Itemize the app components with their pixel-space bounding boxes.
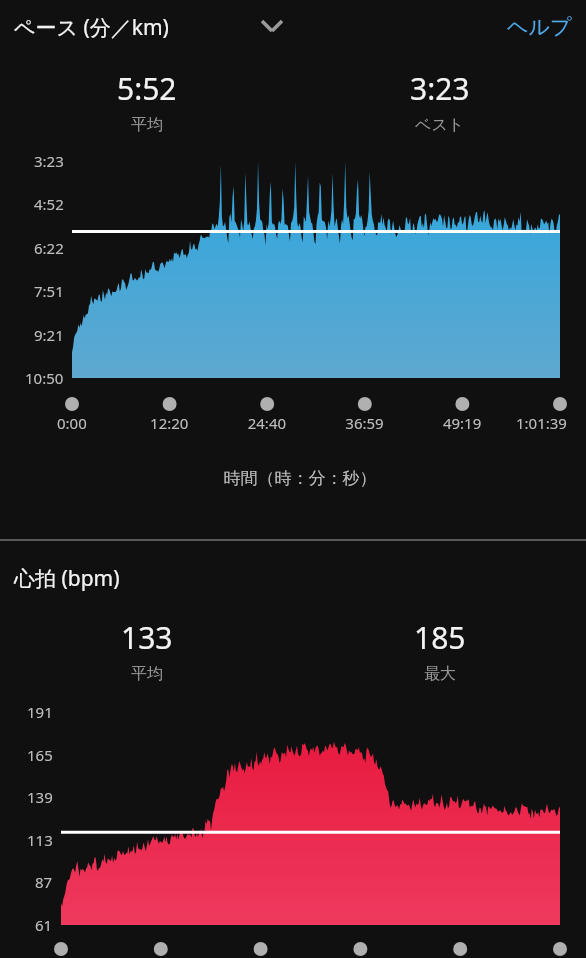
button[interactable]: ヘルプ bbox=[470, 2, 582, 52]
button[interactable]: ペース指標を選択 bbox=[4, 2, 294, 52]
